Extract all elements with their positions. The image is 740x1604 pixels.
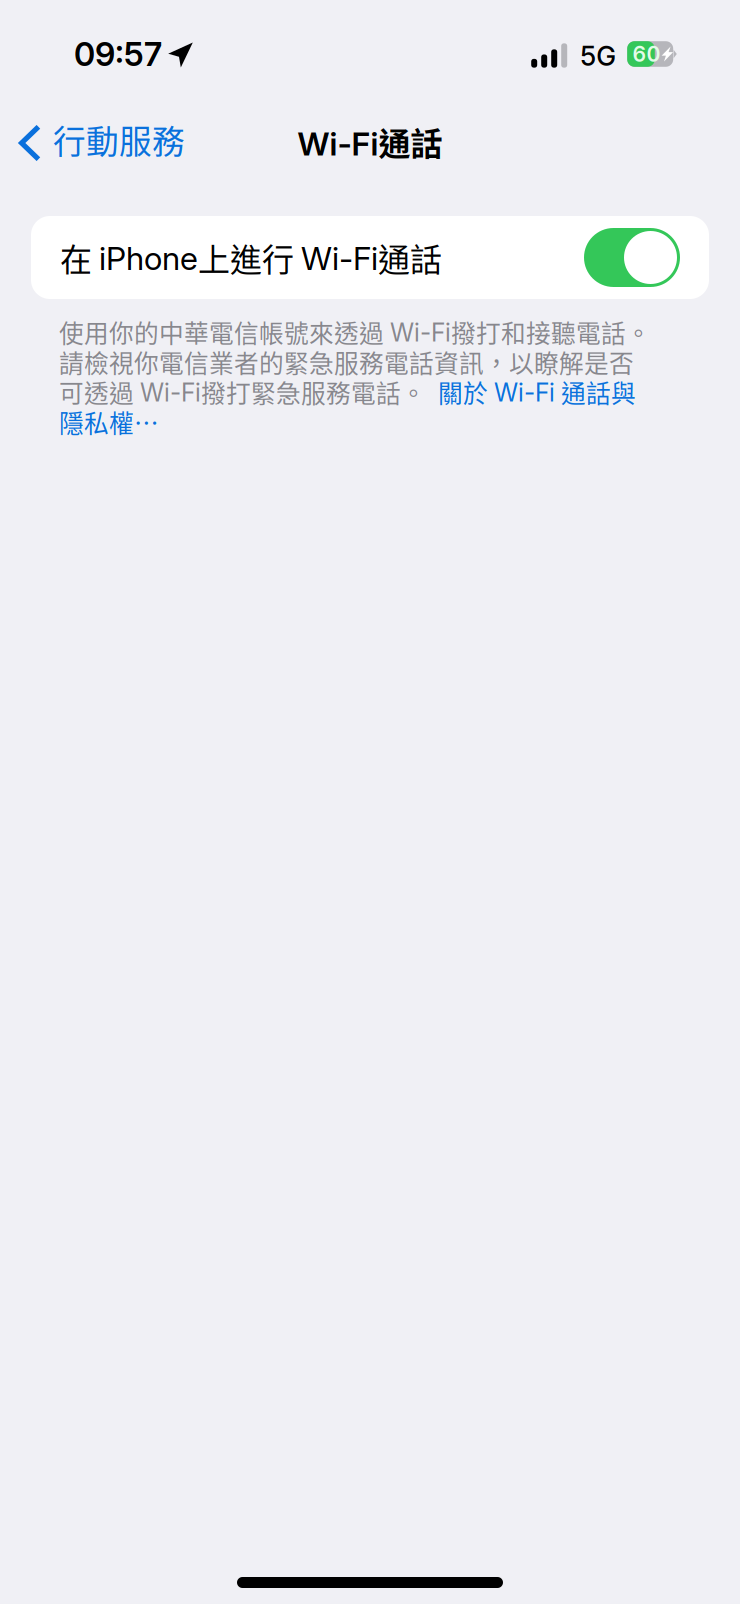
staticText: 在 iPhone上進行 Wi-Fi通話 (60, 238, 442, 277)
staticText: 09:57 (74, 36, 162, 72)
staticText: 請檢視你電信業者的緊急服務電話資訊，以瞭解是否 (59, 347, 634, 377)
staticText: Wi-Fi通話 (297, 122, 442, 161)
button[interactable]: 關於 Wi-Fi 通話與 (438, 377, 636, 407)
staticText: 可透過 Wi-Fi撥打緊急服務電話。 (59, 377, 426, 407)
staticText: 關於 Wi-Fi 通話與 (438, 377, 636, 407)
staticText: 使用你的中華電信帳號來透過 Wi-Fi撥打和接聽電話。 (59, 317, 651, 347)
button[interactable]: 隱私權⋯ (59, 407, 159, 437)
button[interactable]: 行動服務 (0, 106, 205, 180)
staticText: 60 (633, 42, 661, 66)
staticText: 行動服務 (53, 120, 185, 159)
staticText: 5G (580, 41, 616, 70)
staticText: 隱私權⋯ (59, 407, 159, 437)
button[interactable]: 在 iPhone上進行 Wi-Fi通話 (31, 216, 709, 299)
